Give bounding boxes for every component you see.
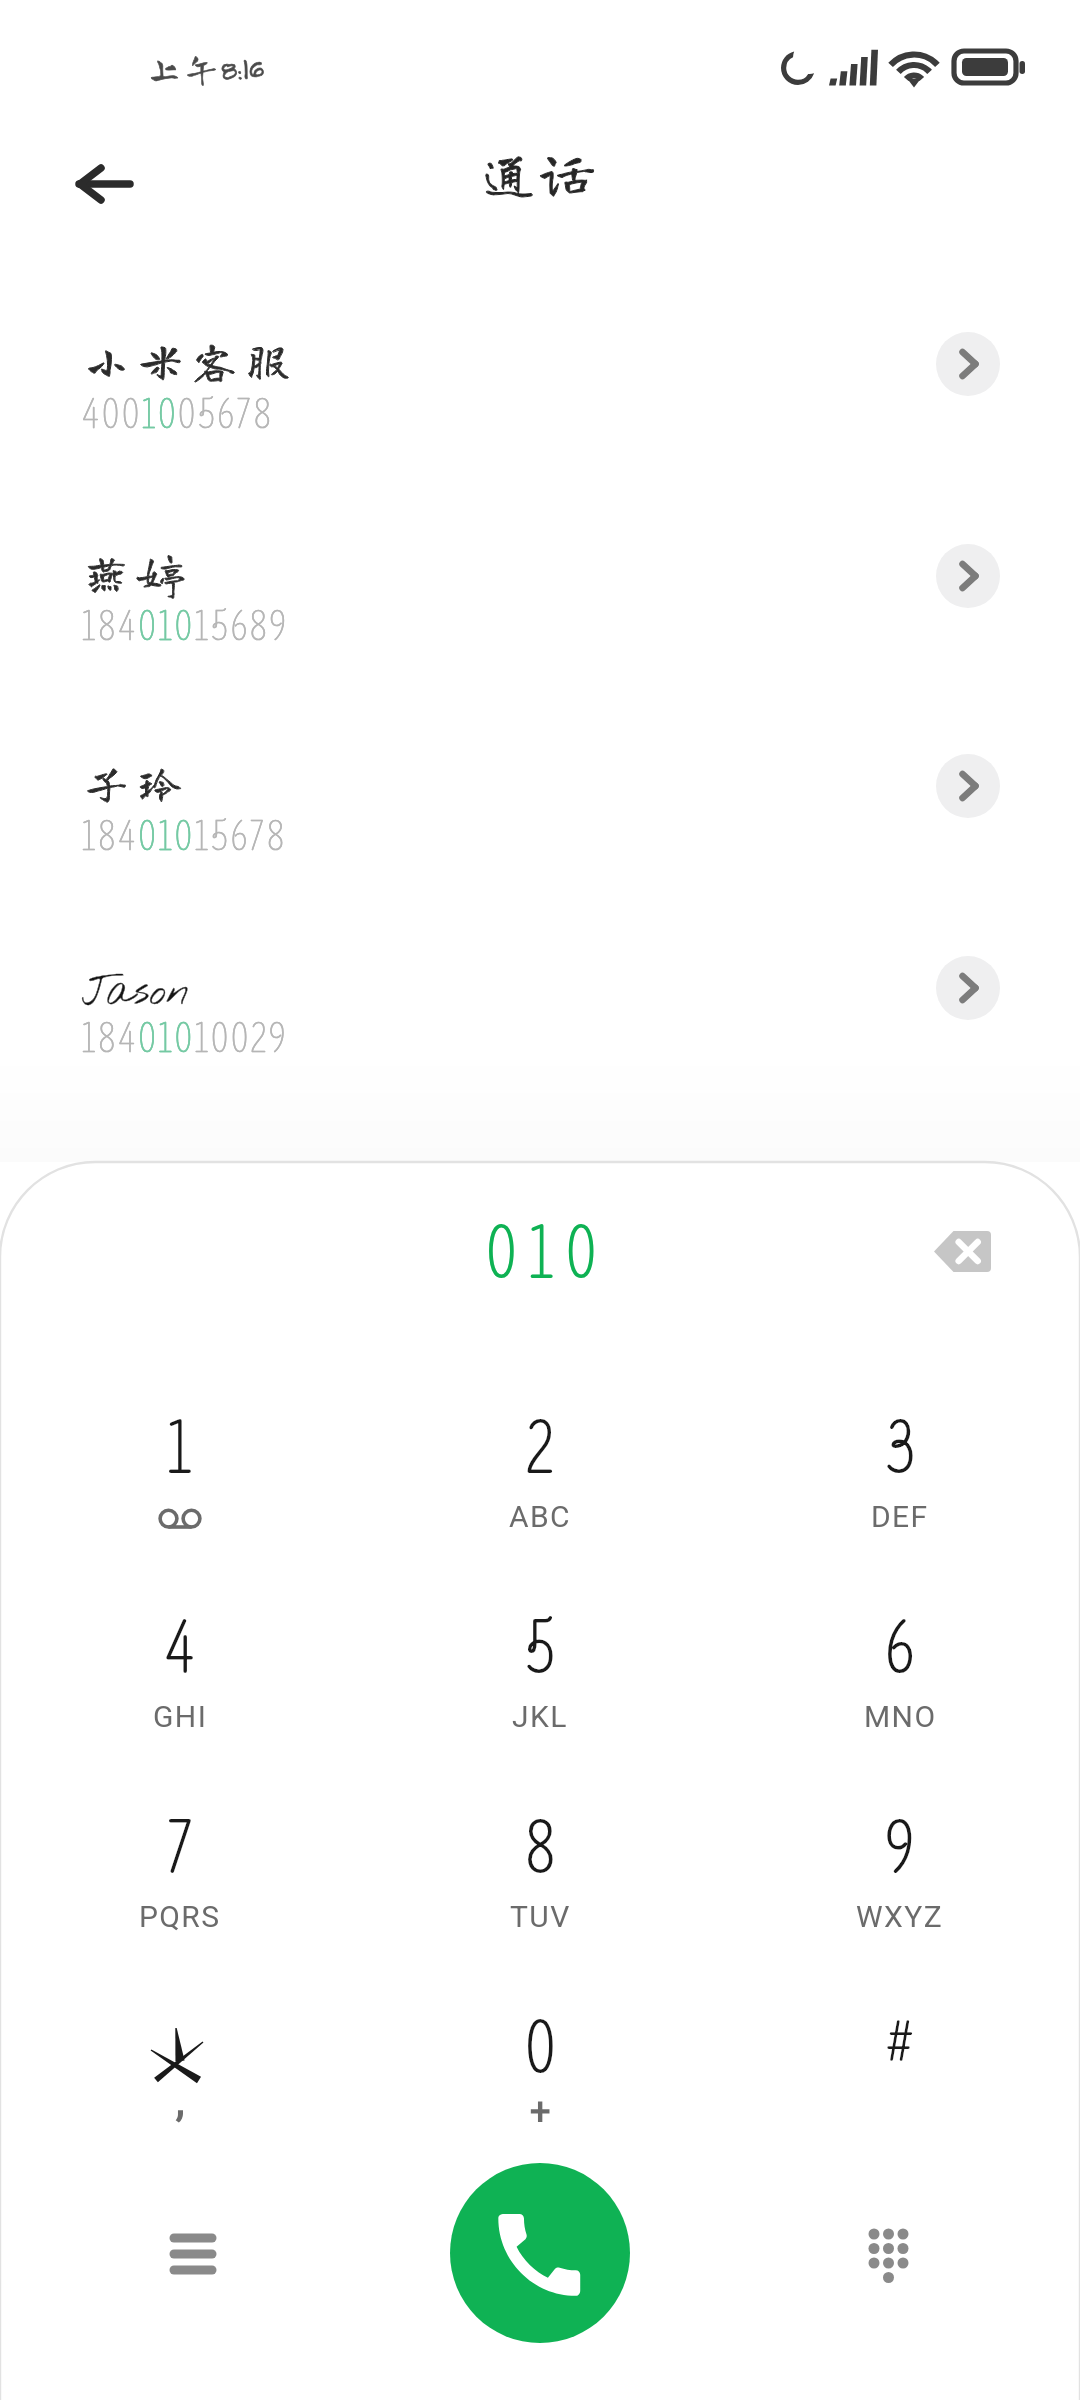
staticText: 18401015678 [82, 813, 288, 863]
button[interactable]: # [720, 2007, 1080, 2207]
staticText: 1 [168, 1407, 192, 1492]
staticText: 4001005678 [82, 391, 274, 441]
staticText: 18401010029 [82, 1015, 289, 1065]
button[interactable]: Jason [0, 956, 1080, 1151]
staticText: TUV [510, 1899, 571, 1934]
staticText: 18401010029 [82, 1015, 289, 1065]
staticText: 6 [886, 1607, 914, 1692]
staticText: 9 [886, 1807, 914, 1892]
staticText: 7 [168, 1807, 193, 1892]
staticText: 5 [526, 1607, 555, 1692]
staticText: 3 [886, 1407, 915, 1492]
button[interactable]: 1 [0, 1407, 360, 1607]
button[interactable]: 子玲 [0, 754, 1080, 949]
button[interactable]: 5 [360, 1607, 720, 1807]
staticText: + [530, 2091, 551, 2133]
staticText: 18401015689 [82, 603, 289, 653]
staticText: Jason [82, 967, 189, 1020]
staticText: JKL [512, 1699, 568, 1734]
staticText: 上午8:16 [146, 49, 263, 86]
button[interactable]: 4 [0, 1607, 360, 1807]
staticText: 8 [526, 1807, 555, 1892]
button[interactable]: , [0, 2007, 360, 2207]
staticText: 子玲 [84, 759, 193, 804]
staticText: MNO [864, 1699, 937, 1734]
staticText: 7 [168, 1807, 193, 1892]
staticText: 0 [526, 2007, 555, 2092]
button[interactable]: Contact details [936, 332, 1000, 396]
staticText: 3 [886, 1407, 915, 1492]
staticText: 上午8:16 [146, 49, 263, 86]
button[interactable]: Keypad [848, 2212, 928, 2292]
staticText: 18401015689 [82, 603, 289, 653]
staticText: 1 [168, 1407, 192, 1492]
staticText: 通话 [482, 145, 598, 199]
staticText: DEF [871, 1499, 929, 1534]
button[interactable]: Back [44, 146, 162, 222]
button[interactable]: 6 [720, 1607, 1080, 1807]
button[interactable]: 3 [720, 1407, 1080, 1607]
staticText: 010 [487, 1212, 610, 1297]
button[interactable]: 燕婷 [0, 544, 1080, 739]
staticText: 燕婷 [84, 549, 193, 594]
staticText: 18401015678 [82, 813, 288, 863]
staticText: WXYZ [856, 1899, 944, 1934]
staticText: 4001005678 [82, 391, 274, 441]
button[interactable]: 2 [360, 1407, 720, 1607]
staticText: 4 [165, 1607, 195, 1692]
button[interactable]: 小米客服 [0, 332, 1080, 527]
staticText: # [887, 2012, 913, 2075]
staticText: PQRS [139, 1899, 221, 1934]
staticText: GHI [153, 1699, 208, 1734]
button[interactable]: Contact details [936, 544, 1000, 608]
staticText: 9 [886, 1807, 914, 1892]
staticText: ABC [509, 1499, 571, 1534]
button[interactable]: 9 [720, 1807, 1080, 2007]
button[interactable]: Contact details [936, 754, 1000, 818]
staticText: 小米客服 [84, 337, 301, 382]
staticText: 5 [526, 1607, 555, 1692]
staticText: # [887, 2012, 913, 2075]
staticText: 8 [526, 1807, 555, 1892]
button[interactable]: 0 [360, 2007, 720, 2207]
button[interactable]: Call [450, 2163, 630, 2343]
button[interactable]: 8 [360, 1807, 720, 2007]
staticText: 0 [526, 2007, 555, 2092]
button[interactable]: Delete [934, 1231, 991, 1272]
staticText: , [176, 2077, 185, 2126]
staticText: 4 [165, 1607, 195, 1692]
staticText: 小米客服 [84, 337, 301, 382]
staticText: 子玲 [84, 759, 193, 804]
button[interactable]: Call log [140, 2214, 240, 2294]
button[interactable]: Contact details [936, 956, 1000, 1020]
staticText: Jason [82, 967, 189, 1020]
staticText: 2 [527, 1407, 554, 1492]
staticText: 2 [527, 1407, 554, 1492]
button[interactable]: 7 [0, 1807, 360, 2007]
staticText: 6 [886, 1607, 914, 1692]
staticText: 010 [487, 1212, 610, 1297]
staticText: 通话 [482, 145, 598, 199]
staticText: 燕婷 [84, 549, 193, 594]
